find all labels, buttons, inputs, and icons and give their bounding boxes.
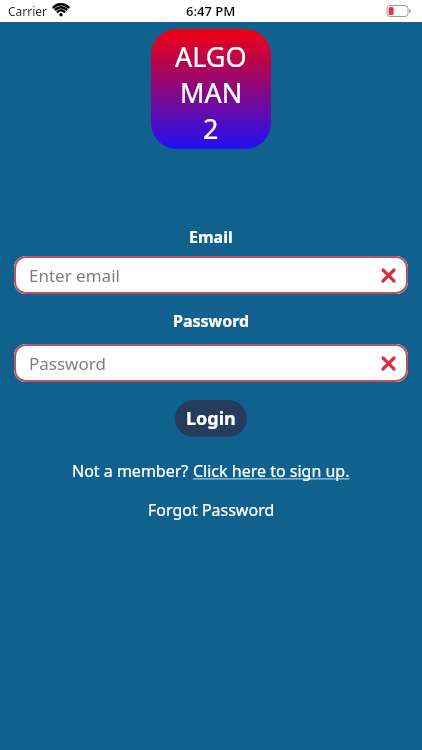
staticText: Password: [173, 310, 250, 332]
staticText: Carrier: [8, 3, 48, 19]
staticText: ALGO: [175, 38, 247, 75]
staticText: Email: [189, 226, 233, 248]
button[interactable]: Click here to sign up.: [193, 460, 350, 482]
button[interactable]: Login: [175, 400, 247, 437]
staticText: MAN: [180, 74, 243, 111]
button[interactable]: Enter email: [14, 256, 408, 294]
staticText: Login: [186, 406, 236, 431]
staticText: Not a member?: [72, 460, 193, 482]
staticText: Password: [29, 352, 106, 375]
button[interactable]: Forgot Password: [148, 499, 275, 521]
staticText: 6:47 PM: [186, 2, 236, 20]
button[interactable]: Password: [14, 344, 408, 382]
staticText: 2: [203, 110, 219, 147]
staticText: Enter email: [29, 264, 120, 287]
